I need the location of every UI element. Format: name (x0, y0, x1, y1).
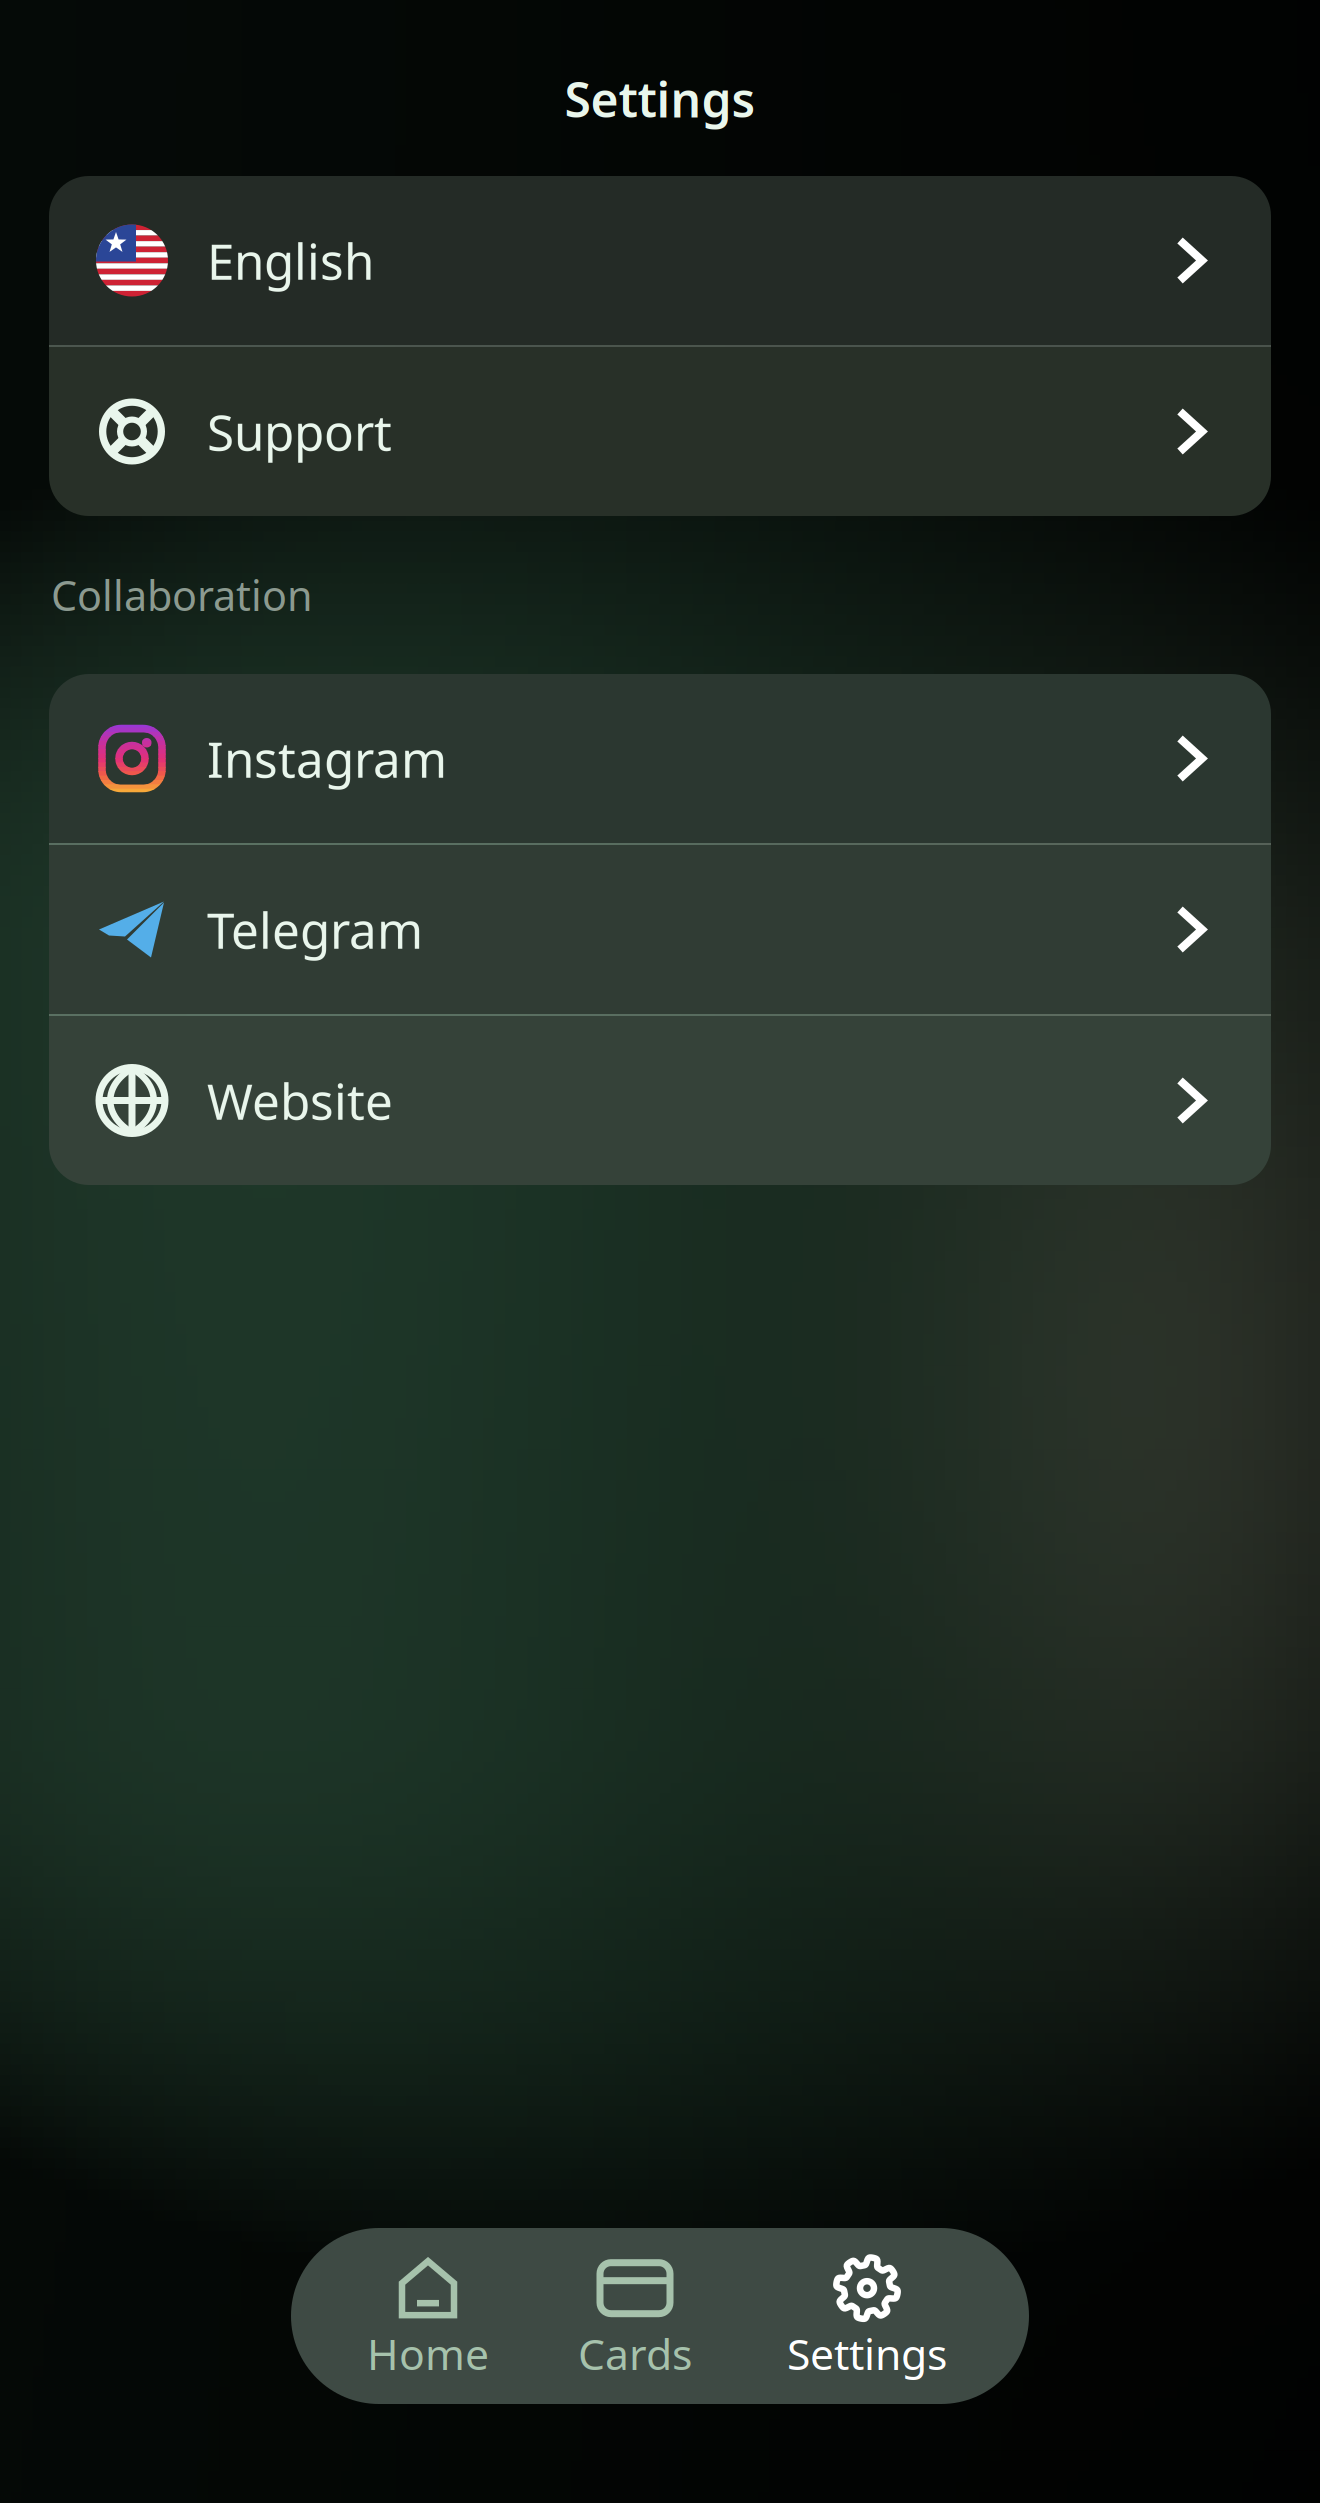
button[interactable]: Cards (545, 2228, 725, 2404)
staticText: Website (207, 1068, 393, 1133)
staticText: Instagram (207, 726, 447, 791)
staticText: Settings (564, 67, 755, 131)
staticText: Settings (787, 2325, 947, 2382)
staticText: Support (207, 399, 392, 464)
button[interactable]: Website (49, 1016, 1271, 1185)
staticText: Collaboration (51, 568, 313, 622)
staticText: Telegram (207, 897, 423, 962)
button[interactable]: Instagram (49, 674, 1271, 843)
staticText: English (207, 228, 374, 293)
staticText: Cards (578, 2325, 692, 2382)
button[interactable]: Support (49, 347, 1271, 516)
button[interactable]: English (49, 176, 1271, 345)
button[interactable]: Home (338, 2228, 518, 2404)
button[interactable]: Telegram (49, 845, 1271, 1014)
staticText: Home (367, 2325, 489, 2382)
button[interactable]: Settings (767, 2228, 967, 2404)
